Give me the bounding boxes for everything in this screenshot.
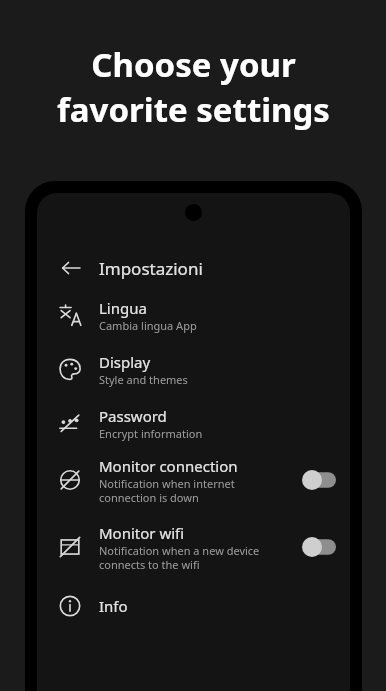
staticText: favorite settings xyxy=(57,87,330,132)
staticText: Encrypt information xyxy=(99,426,203,441)
staticText: Impostazioni xyxy=(99,257,203,280)
staticText: Notification when a new device connects … xyxy=(99,543,260,572)
button[interactable]: Toggle Monitor connection xyxy=(302,470,336,490)
button[interactable]: Toggle Monitor wifi xyxy=(302,537,336,557)
staticText: Lingua xyxy=(99,298,147,318)
staticText: Style and themes xyxy=(99,372,188,387)
button[interactable]: Back xyxy=(57,254,85,282)
staticText: Cambia lingua App xyxy=(99,318,197,333)
staticText: Password xyxy=(99,406,167,426)
staticText: Monitor wifi xyxy=(99,523,185,543)
button[interactable]: Password xyxy=(37,399,350,447)
staticText: Monitor connection xyxy=(99,456,238,476)
button[interactable]: Lingua xyxy=(37,291,350,339)
button[interactable]: Display xyxy=(37,345,350,393)
button[interactable]: Monitor connection xyxy=(37,451,350,509)
staticText: Notification when internet connection is… xyxy=(99,476,235,505)
button[interactable]: Info xyxy=(37,586,350,626)
staticText: Info xyxy=(99,596,128,616)
staticText: Choose your xyxy=(91,42,296,87)
staticText: Display xyxy=(99,352,151,372)
button[interactable]: Monitor wifi xyxy=(37,518,350,576)
